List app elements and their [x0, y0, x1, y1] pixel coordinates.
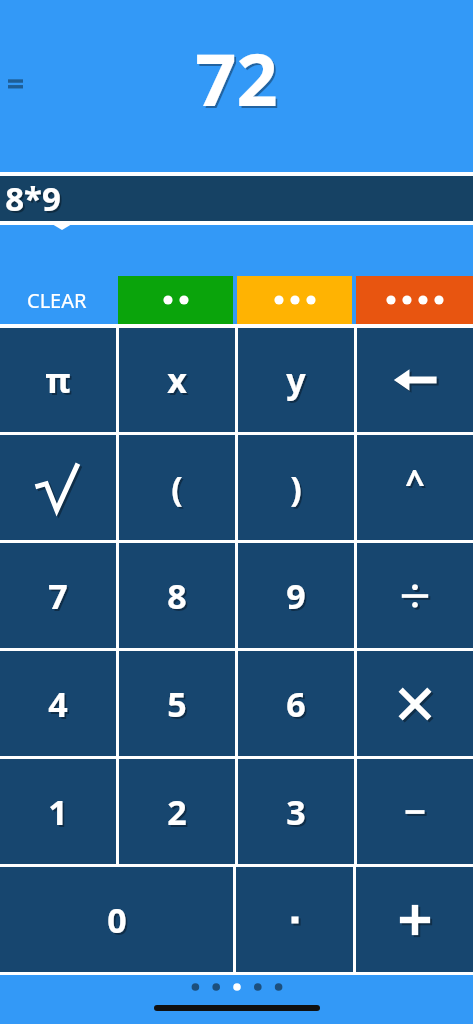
staticText: 0: [109, 899, 129, 945]
staticText: 3: [286, 789, 306, 835]
button[interactable]: 8: [119, 543, 235, 648]
button[interactable]: 3: [238, 759, 354, 864]
button[interactable]: 2: [119, 759, 235, 864]
staticText: CLEAR: [27, 287, 87, 314]
staticText: 7: [50, 575, 70, 621]
staticText: 4: [50, 683, 70, 729]
button[interactable]: 8*9: [0, 176, 473, 221]
button[interactable]: Divide: [357, 543, 473, 648]
staticText: x: [169, 359, 189, 405]
button[interactable]: Square root: [0, 435, 116, 540]
button[interactable]: ): [238, 435, 354, 540]
staticText: 4: [48, 681, 68, 727]
button[interactable]: 6: [238, 651, 354, 756]
staticText: 6: [288, 683, 308, 729]
button[interactable]: π: [0, 328, 116, 432]
staticText: 72: [197, 31, 280, 129]
staticText: 9: [286, 573, 306, 619]
staticText: (: [171, 465, 183, 511]
button[interactable]: 1: [0, 759, 116, 864]
button[interactable]: 4: [0, 651, 116, 756]
button[interactable]: 9: [238, 543, 354, 648]
button[interactable]: Three-dot mode: [237, 276, 352, 324]
staticText: 2: [169, 791, 189, 837]
staticText: 9: [288, 575, 308, 621]
staticText: 2: [167, 789, 187, 835]
staticText: x: [167, 357, 187, 403]
button[interactable]: y: [238, 328, 354, 432]
button[interactable]: Minus: [357, 759, 473, 864]
staticText: π: [45, 357, 71, 403]
staticText: 5: [167, 681, 187, 727]
staticText: ): [292, 467, 304, 513]
staticText: 6: [286, 681, 306, 727]
staticText: 7: [48, 573, 68, 619]
button[interactable]: 5: [119, 651, 235, 756]
button[interactable]: (: [119, 435, 235, 540]
staticText: 0: [107, 897, 127, 943]
staticText: ): [290, 465, 302, 511]
staticText: 1: [50, 791, 70, 837]
button[interactable]: Decimal point: [236, 867, 353, 972]
button[interactable]: CLEAR: [0, 276, 114, 324]
button[interactable]: 7: [0, 543, 116, 648]
button[interactable]: Power: [357, 435, 473, 540]
staticText: 8*9: [5, 176, 61, 221]
button[interactable]: Four-dot mode: [356, 276, 473, 324]
button[interactable]: Plus: [356, 867, 473, 972]
staticText: y: [288, 359, 308, 405]
staticText: ^: [405, 459, 425, 505]
button[interactable]: Two-dot mode: [118, 276, 233, 324]
button[interactable]: Multiply: [357, 651, 473, 756]
staticText: 1: [48, 789, 68, 835]
staticText: 8: [169, 575, 189, 621]
staticText: 5: [169, 683, 189, 729]
staticText: ^: [407, 461, 427, 507]
staticText: π: [47, 359, 73, 405]
staticText: (: [173, 467, 185, 513]
staticText: 8*9: [7, 178, 63, 223]
staticText: 8: [167, 573, 187, 619]
staticText: 72: [195, 29, 278, 127]
staticText: y: [286, 357, 306, 403]
staticText: 3: [288, 791, 308, 837]
button[interactable]: x: [119, 328, 235, 432]
button[interactable]: 0: [0, 867, 233, 972]
button[interactable]: Backspace: [357, 328, 473, 432]
